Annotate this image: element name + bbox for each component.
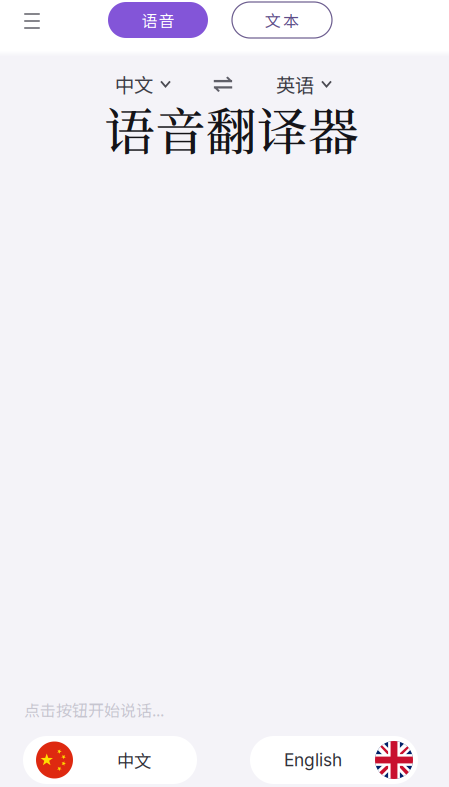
staticText: 语音翻译器: [104, 92, 359, 165]
button[interactable]: 语音: [108, 2, 208, 38]
staticText: 英语: [276, 70, 314, 98]
staticText: 点击按钮开始说话...: [24, 698, 164, 721]
staticText: 语音: [141, 8, 174, 32]
staticText: 文本: [265, 8, 299, 32]
button[interactable]: 中文: [110, 68, 175, 100]
staticText: 中文: [117, 747, 151, 773]
staticText: English: [284, 749, 342, 770]
button[interactable]: English: [250, 736, 418, 784]
button[interactable]: 英语: [271, 68, 336, 100]
button[interactable]: Menu: [10, 0, 54, 43]
button[interactable]: 文本: [232, 2, 332, 38]
staticText: 中文: [115, 70, 153, 98]
button[interactable]: 中文: [23, 736, 197, 784]
button[interactable]: Swap languages: [207, 68, 239, 100]
